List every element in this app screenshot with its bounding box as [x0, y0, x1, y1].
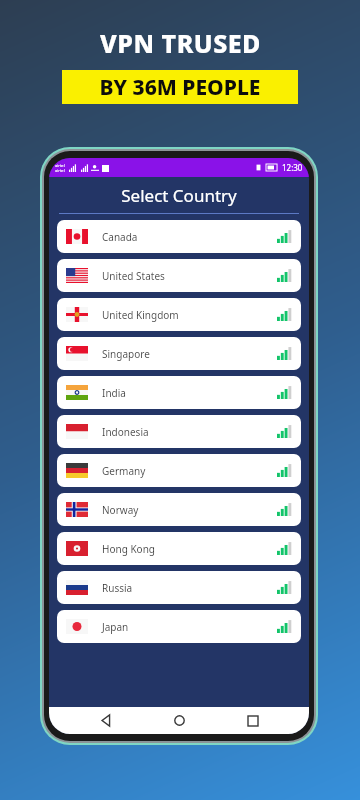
button[interactable]: Germany — [57, 454, 301, 487]
staticText: Japan — [102, 620, 129, 634]
button[interactable]: Japan — [57, 610, 301, 643]
button[interactable]: Russia — [57, 571, 301, 604]
button[interactable]: Indonesia — [57, 415, 301, 448]
staticText: Russia — [102, 581, 133, 595]
button[interactable]: Hong Kong — [57, 532, 301, 565]
button[interactable]: Canada — [57, 220, 301, 253]
staticText: Singapore — [102, 347, 150, 361]
staticText: India — [102, 386, 126, 400]
button[interactable]: Norway — [57, 493, 301, 526]
staticText: 12:30 — [282, 162, 303, 173]
staticText: United Kingdom — [102, 308, 179, 322]
staticText: airtel — [55, 168, 65, 173]
staticText: airtel — [55, 163, 65, 168]
button[interactable]: Back — [89, 707, 123, 734]
button[interactable]: Singapore — [57, 337, 301, 370]
button[interactable]: India — [57, 376, 301, 409]
button[interactable]: Home — [162, 707, 196, 734]
staticText: United States — [102, 269, 165, 283]
button[interactable]: United States — [57, 259, 301, 292]
staticText: Select Country — [49, 184, 309, 207]
staticText: Hong Kong — [102, 542, 155, 556]
staticText: BY 36M PEOPLE — [99, 73, 261, 102]
staticText: Indonesia — [102, 425, 149, 439]
button[interactable]: Recent apps — [236, 707, 270, 734]
button[interactable]: United Kingdom — [57, 298, 301, 331]
staticText: Canada — [102, 230, 138, 244]
staticText: VPN TRUSED — [100, 26, 261, 60]
staticText: Norway — [102, 503, 139, 517]
staticText: Germany — [102, 464, 146, 478]
